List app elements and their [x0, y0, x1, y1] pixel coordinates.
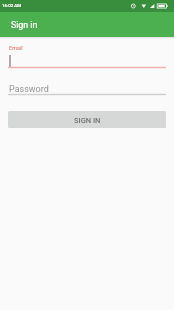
- button[interactable]: SIGN IN: [8, 111, 166, 128]
- staticText: 16:02 AM: [2, 3, 21, 8]
- staticText: Password: [9, 84, 49, 95]
- button[interactable]: Password: [8, 68, 166, 95]
- staticText: SIGN IN: [74, 116, 101, 125]
- button[interactable]: Email: [8, 37, 166, 68]
- staticText: Email: [9, 45, 23, 51]
- staticText: Sign in: [11, 20, 38, 30]
